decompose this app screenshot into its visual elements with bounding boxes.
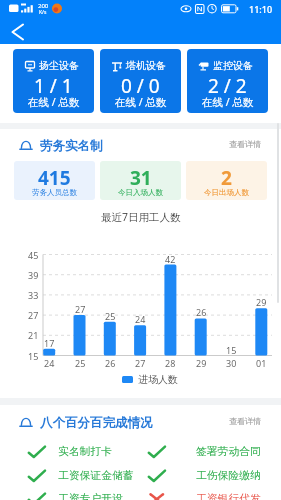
button[interactable]: 31	[100, 161, 181, 200]
staticText: 工资专户开设	[58, 492, 123, 500]
staticText: 415	[38, 165, 71, 186]
staticText: 29	[196, 357, 207, 368]
button[interactable]: 415	[14, 161, 95, 200]
button[interactable]: 监控设备	[187, 49, 268, 113]
staticText: 24	[44, 357, 55, 368]
staticText: 今日出场人数	[204, 188, 249, 197]
staticText: 200	[38, 2, 49, 10]
staticText: 工资银行代发	[196, 492, 261, 500]
staticText: 塔机设备	[126, 59, 166, 72]
staticText: 今日入场人数	[118, 188, 163, 197]
button[interactable]: 工资银行代发	[144, 487, 259, 500]
staticText: 15	[226, 344, 237, 355]
staticText: 在线 / 总数	[202, 95, 254, 108]
button[interactable]: 工资保证金储蓄	[24, 464, 139, 487]
staticText: 工伤保险缴纳	[196, 469, 261, 483]
staticText: 01	[256, 357, 267, 368]
staticText: 查看详情	[229, 416, 261, 426]
staticText: 26	[105, 357, 116, 368]
staticText: 45	[28, 249, 39, 261]
staticText: 进场人数	[138, 373, 178, 386]
staticText: 33	[28, 289, 39, 301]
staticText: 30	[226, 357, 237, 368]
button[interactable]	[2, 18, 36, 44]
staticText: 在线 / 总数	[28, 95, 80, 108]
staticText: 工资保证金储蓄	[58, 469, 134, 483]
staticText: 25	[105, 310, 116, 321]
staticText: 39	[28, 269, 39, 281]
staticText: 最近7日用工人数	[101, 210, 181, 224]
staticText: 31	[130, 165, 152, 186]
staticText: 2 / 2	[208, 73, 247, 94]
staticText: 11:10	[249, 3, 273, 15]
staticText: 21	[28, 329, 39, 341]
staticText: 2	[221, 165, 232, 186]
staticText: 在线 / 总数	[115, 95, 167, 108]
button[interactable]: 扬尘设备	[13, 49, 94, 113]
staticText: 26	[196, 306, 207, 317]
staticText: 24	[135, 313, 146, 324]
staticText: 28	[165, 357, 176, 368]
staticText: 签署劳动合同	[196, 445, 261, 459]
button[interactable]	[0, 413, 281, 433]
button[interactable]: 工资专户开设	[24, 487, 139, 500]
staticText: 劳务人员总数	[32, 188, 77, 197]
staticText: 监控设备	[213, 59, 253, 72]
button[interactable]: 实名制打卡	[24, 440, 139, 463]
staticText: 查看详情	[229, 139, 261, 149]
staticText: 27	[75, 303, 86, 314]
staticText: 25	[75, 357, 86, 368]
button[interactable]: 塔机设备	[100, 49, 181, 113]
staticText: 27	[135, 357, 146, 368]
staticText: 0 / 0	[121, 73, 160, 94]
staticText: 17	[44, 337, 55, 348]
button[interactable]: 签署劳动合同	[144, 440, 259, 463]
staticText: 1 / 1	[34, 73, 73, 94]
staticText: 29	[256, 296, 267, 307]
button[interactable]	[0, 136, 281, 156]
staticText: 实名制打卡	[58, 445, 112, 459]
button[interactable]: 工伤保险缴纳	[144, 464, 259, 487]
staticText: 27	[28, 309, 39, 321]
staticText: 42	[165, 253, 176, 264]
staticText: K/s	[39, 9, 47, 16]
staticText: 劳务实名制	[40, 138, 103, 154]
staticText: 八个百分百完成情况	[40, 415, 153, 431]
staticText: 15	[28, 350, 39, 362]
button[interactable]: 2	[186, 161, 267, 200]
staticText: 扬尘设备	[39, 59, 79, 72]
